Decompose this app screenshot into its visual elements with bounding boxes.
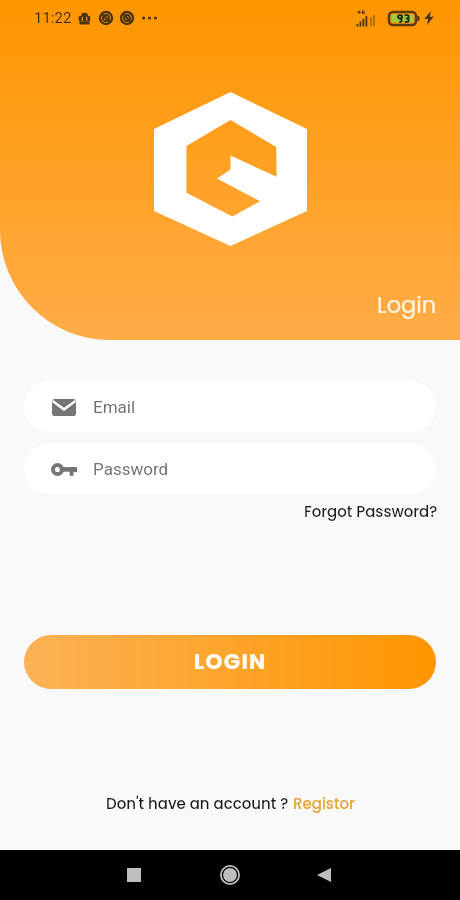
button[interactable]: Home [206, 851, 254, 899]
button[interactable]: Email [24, 381, 436, 432]
staticText: Email [93, 397, 136, 417]
staticText: LOGIN [194, 646, 267, 676]
staticText: Don't have an account ? [106, 793, 293, 814]
button[interactable]: Forgot Password? [304, 501, 438, 522]
button[interactable]: Password [24, 443, 436, 494]
button[interactable]: LOGIN [24, 635, 436, 689]
button[interactable]: Recents [110, 851, 158, 899]
staticText: 11:22 [34, 9, 72, 27]
staticText: Password [93, 459, 169, 479]
staticText: Login [377, 289, 437, 320]
button[interactable]: Registor [293, 793, 355, 814]
button[interactable]: Back [300, 851, 348, 899]
